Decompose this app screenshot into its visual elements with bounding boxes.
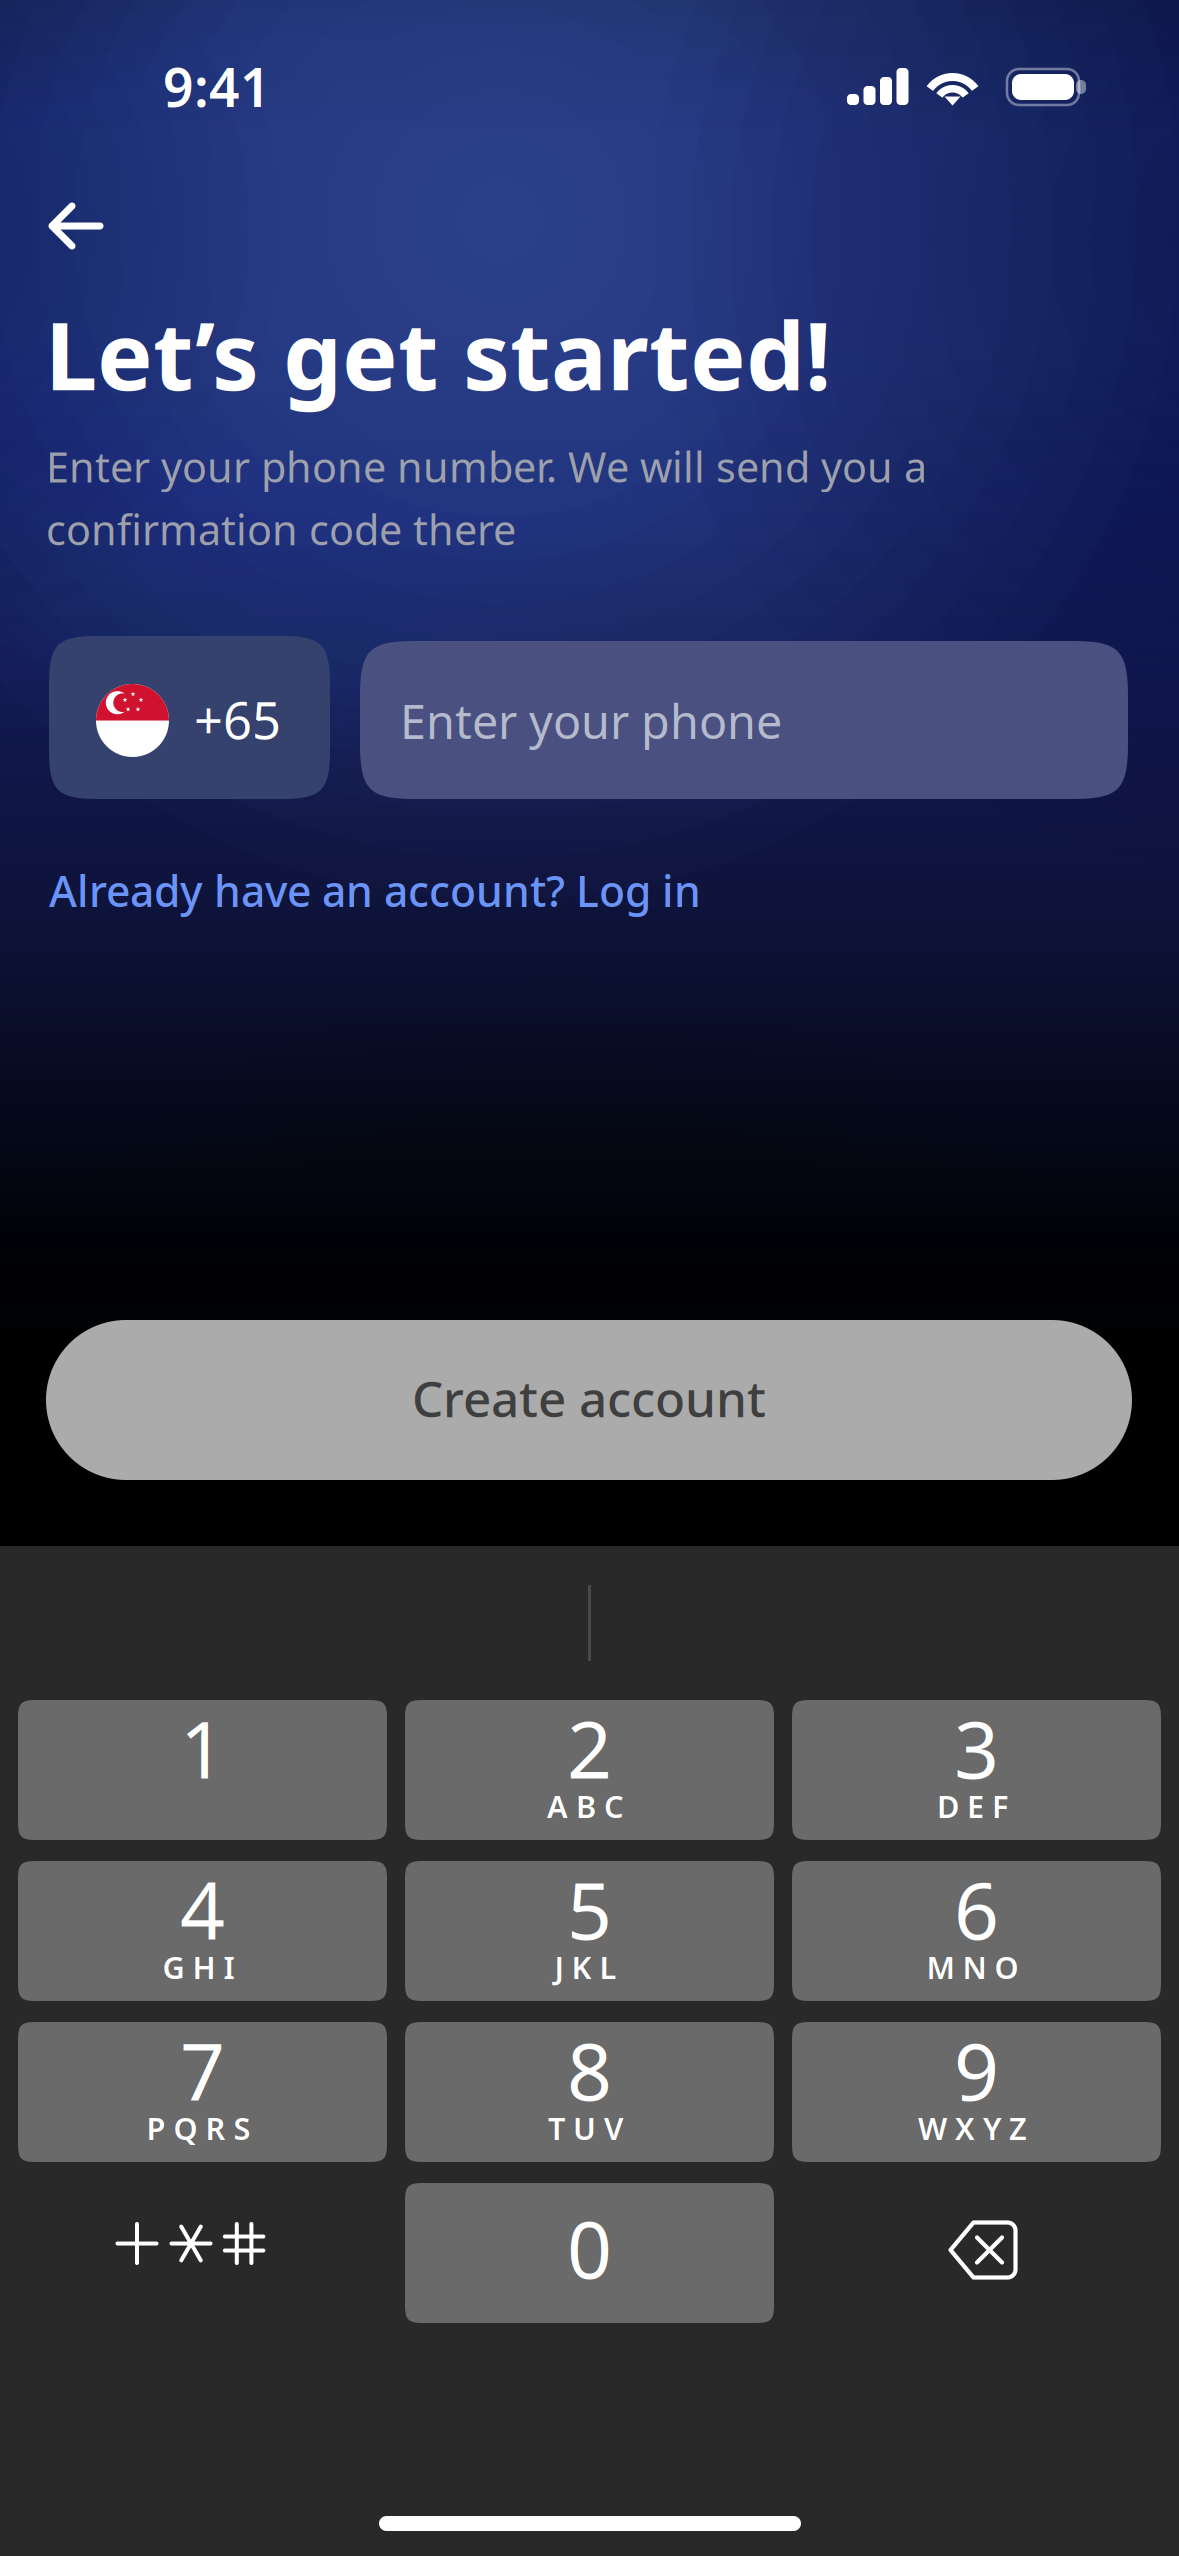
staticText: confirmation code there	[46, 502, 516, 557]
staticText: Let’s get started!	[45, 292, 831, 416]
staticText: GHI	[162, 1947, 234, 1987]
staticText: 7	[180, 2018, 225, 2122]
staticText: 9	[954, 2018, 999, 2122]
staticText: 6	[954, 1857, 999, 1961]
staticText: 2	[567, 1696, 612, 1800]
button[interactable]: 0	[405, 2183, 774, 2323]
staticText: TUV	[548, 2108, 623, 2148]
staticText: Enter your phone number. We will send yo…	[46, 439, 927, 494]
button[interactable]: 8	[405, 2022, 774, 2162]
button[interactable]: 1	[18, 1700, 387, 1840]
staticText: 0	[567, 2196, 612, 2300]
staticText: 3	[954, 1696, 999, 1800]
staticText: 9:41	[163, 51, 271, 122]
staticText: DEF	[937, 1786, 1008, 1826]
button[interactable]: 6	[792, 1861, 1161, 2001]
button[interactable]: 4	[18, 1861, 387, 2001]
staticText: Enter your phone	[400, 690, 782, 752]
staticText: 8	[567, 2018, 612, 2122]
staticText: 1	[180, 1696, 225, 1800]
button[interactable]: Delete	[792, 2183, 1161, 2323]
button[interactable]: Back	[18, 171, 138, 281]
staticText: PQRS	[146, 2108, 250, 2148]
staticText: ABC	[547, 1786, 624, 1826]
staticText: +65	[194, 686, 281, 753]
button[interactable]: 2	[405, 1700, 774, 1840]
button[interactable]: 5	[405, 1861, 774, 2001]
staticText: 4	[180, 1857, 225, 1961]
button[interactable]: Country code +65	[49, 636, 330, 799]
staticText: MNO	[926, 1947, 1018, 1987]
button[interactable]: 7	[18, 2022, 387, 2162]
staticText: JKL	[554, 1947, 616, 1987]
button[interactable]: Symbols	[18, 2183, 387, 2323]
button[interactable]: Create account	[46, 1320, 1132, 1480]
button[interactable]: 9	[792, 2022, 1161, 2162]
staticText: 5	[567, 1857, 612, 1961]
staticText: Create account	[412, 1365, 766, 1431]
button[interactable]: Already have an account? Log in	[49, 852, 701, 929]
staticText: WXYZ	[918, 2108, 1027, 2148]
staticText: Already have an account? Log in	[49, 862, 701, 919]
button[interactable]: 3	[792, 1700, 1161, 1840]
button[interactable]: Enter your phone	[360, 641, 1128, 799]
